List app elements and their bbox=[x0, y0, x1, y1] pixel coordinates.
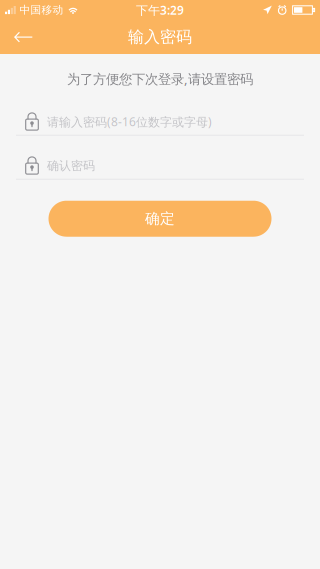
staticText: 确认密码 bbox=[47, 158, 95, 173]
staticText: 请输入密码(8-16位数字或字母) bbox=[47, 114, 212, 130]
button[interactable]: 确定 bbox=[48, 201, 271, 237]
staticText: 中国移动 bbox=[19, 3, 63, 16]
button[interactable]: 请输入密码(8-16位数字或字母) bbox=[0, 109, 320, 136]
button[interactable]: 确认密码 bbox=[0, 153, 320, 180]
staticText: 为了方便您下次登录,请设置密码 bbox=[67, 70, 253, 88]
button[interactable]: Back bbox=[0, 20, 46, 54]
staticText: 输入密码 bbox=[128, 27, 192, 47]
staticText: 下午3:29 bbox=[136, 2, 184, 18]
staticText: 确定 bbox=[145, 210, 175, 228]
